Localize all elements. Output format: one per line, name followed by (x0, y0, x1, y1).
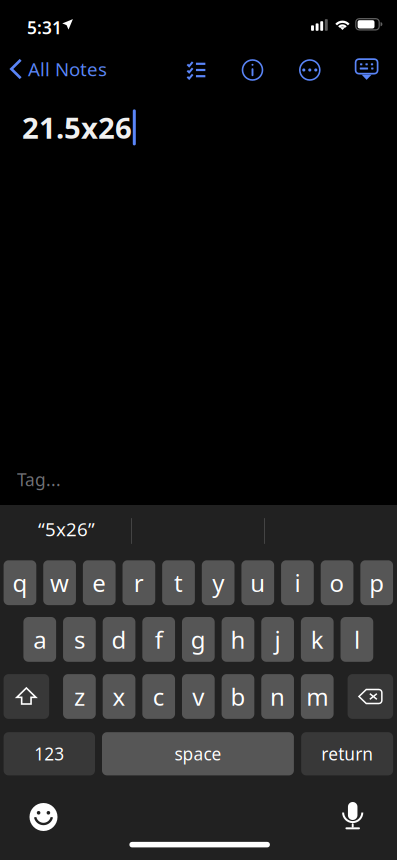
staticText: z (74, 681, 85, 712)
staticText: r (134, 567, 144, 599)
button[interactable]: Dictation (331, 794, 375, 838)
button[interactable]: a (23, 617, 56, 662)
button[interactable]: f (142, 617, 175, 662)
button[interactable]: n (261, 674, 294, 719)
button[interactable]: k (301, 617, 334, 662)
staticText: o (330, 567, 345, 599)
button[interactable]: c (142, 674, 175, 719)
button[interactable]: w (43, 560, 76, 605)
button[interactable]: All Notes (2, 47, 115, 91)
staticText: k (311, 623, 324, 655)
staticText: x (113, 681, 126, 712)
staticText: w (50, 567, 69, 599)
staticText: All Notes (28, 57, 107, 81)
staticText: q (12, 567, 27, 599)
button[interactable]: z (63, 674, 96, 719)
staticText: l (354, 623, 360, 655)
staticText: e (92, 567, 106, 599)
button[interactable]: d (103, 617, 135, 662)
button[interactable]: Emoji (21, 795, 65, 839)
button[interactable]: l (340, 617, 373, 662)
button[interactable]: r (122, 560, 155, 605)
staticText: f (155, 623, 163, 655)
button[interactable]: Delete (348, 674, 393, 719)
button[interactable]: space (102, 732, 294, 775)
staticText: t (174, 567, 183, 599)
button[interactable]: m (301, 674, 334, 719)
button[interactable]: return (301, 732, 393, 775)
button[interactable]: i (281, 560, 314, 605)
staticText: “5x26” (38, 517, 95, 541)
staticText: s (74, 623, 85, 655)
staticText: c (153, 681, 165, 712)
staticText: Tag... (17, 468, 61, 491)
staticText: p (369, 567, 384, 599)
staticText: b (230, 681, 245, 712)
button[interactable]: q (4, 560, 36, 605)
button[interactable]: u (241, 560, 274, 605)
button[interactable]: Shift (4, 674, 49, 719)
button[interactable]: 123 (4, 732, 95, 775)
staticText: j (275, 623, 281, 655)
staticText: a (33, 623, 46, 655)
button[interactable]: h (222, 617, 254, 662)
staticText: m (306, 681, 328, 712)
button[interactable]: j (261, 617, 294, 662)
staticText: 21.5x26 (22, 108, 132, 147)
button[interactable]: b (222, 674, 254, 719)
staticText: return (321, 742, 373, 765)
button[interactable]: Checklist (174, 47, 218, 91)
button[interactable]: e (83, 560, 116, 605)
button[interactable]: p (360, 560, 393, 605)
button[interactable]: g (182, 617, 215, 662)
staticText: v (192, 681, 204, 712)
button[interactable]: Info (230, 48, 274, 92)
staticText: space (174, 742, 221, 765)
staticText: 5:31 (27, 16, 62, 39)
button[interactable]: y (202, 560, 234, 605)
button[interactable]: v (182, 674, 215, 719)
button[interactable]: More (288, 48, 332, 92)
staticText: n (270, 681, 285, 712)
button[interactable]: t (162, 560, 195, 605)
staticText: y (212, 567, 224, 599)
staticText: i (294, 567, 300, 599)
staticText: h (230, 623, 245, 655)
staticText: g (191, 623, 206, 655)
button[interactable]: Hide Keyboard (345, 47, 389, 91)
button[interactable]: x (103, 674, 135, 719)
button[interactable]: o (321, 560, 353, 605)
button[interactable]: s (63, 617, 96, 662)
staticText: 123 (34, 742, 64, 765)
staticText: d (112, 623, 127, 655)
staticText: u (250, 567, 265, 599)
